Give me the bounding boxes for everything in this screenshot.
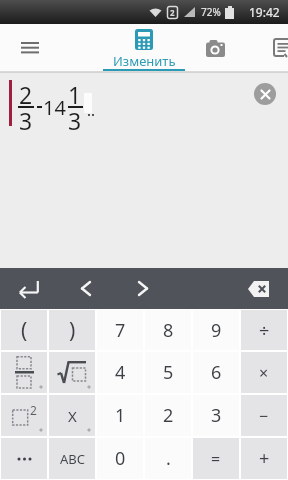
button[interactable] <box>1 352 47 393</box>
button[interactable]: + <box>241 438 287 479</box>
staticText: ÷ <box>259 318 270 343</box>
staticText: 2 <box>170 7 175 18</box>
button[interactable]: = <box>193 438 239 479</box>
staticText: 19:42 <box>249 4 280 20</box>
button[interactable]: 3 <box>193 395 239 436</box>
button[interactable] <box>230 268 288 309</box>
button[interactable]: 4 <box>97 352 143 393</box>
button[interactable]: 2 <box>145 395 191 436</box>
button[interactable]: ) <box>49 310 95 350</box>
button[interactable] <box>0 268 57 309</box>
button[interactable]: 9 <box>193 310 239 350</box>
staticText: 9 <box>211 318 222 343</box>
button[interactable]: 6 <box>193 352 239 393</box>
staticText: 2 <box>19 79 33 110</box>
staticText: 8 <box>163 318 174 343</box>
staticText: 72% <box>201 5 221 19</box>
staticText: 1 <box>68 79 82 110</box>
button[interactable]: − <box>241 395 287 436</box>
staticText: ( <box>21 316 28 345</box>
button[interactable] <box>114 268 172 309</box>
staticText: = <box>211 448 221 470</box>
staticText: Изменить <box>113 52 176 70</box>
staticText: 3 <box>211 403 222 428</box>
button[interactable]: 8 <box>145 310 191 350</box>
button[interactable]: 2 <box>1 395 47 436</box>
button[interactable]: ABC <box>49 438 95 479</box>
staticText: 7 <box>115 318 126 343</box>
button[interactable] <box>1 438 47 479</box>
button[interactable] <box>254 83 276 105</box>
button[interactable] <box>57 268 114 309</box>
staticText: . <box>166 446 171 471</box>
button[interactable]: 7 <box>97 310 143 350</box>
button[interactable]: Изменить <box>99 24 189 72</box>
staticText: 1 <box>115 403 126 428</box>
staticText: ) <box>69 316 76 345</box>
staticText: 5 <box>163 360 174 385</box>
staticText: 2 <box>163 403 174 428</box>
staticText: 3 <box>68 105 82 136</box>
staticText: + <box>259 446 270 471</box>
staticText: × <box>259 362 269 384</box>
staticText: 2 <box>30 402 37 418</box>
button[interactable]: ÷ <box>241 310 287 350</box>
staticText: X <box>68 406 77 426</box>
button[interactable] <box>49 352 95 393</box>
staticText: 4 <box>115 360 126 385</box>
staticText: − <box>259 405 269 427</box>
staticText: 14 <box>43 94 66 121</box>
staticText: 6 <box>211 360 222 385</box>
button[interactable] <box>13 31 47 65</box>
staticText: 3 <box>19 105 33 136</box>
staticText: ABC <box>60 450 85 468</box>
button[interactable]: 5 <box>145 352 191 393</box>
staticText: 0 <box>115 446 126 471</box>
button[interactable]: X <box>49 395 95 436</box>
button[interactable]: × <box>241 352 287 393</box>
button[interactable]: . <box>145 438 191 479</box>
button[interactable] <box>274 30 288 66</box>
button[interactable] <box>197 30 233 66</box>
button[interactable]: ( <box>1 310 47 350</box>
button[interactable]: 0 <box>97 438 143 479</box>
button[interactable]: 1 <box>97 395 143 436</box>
